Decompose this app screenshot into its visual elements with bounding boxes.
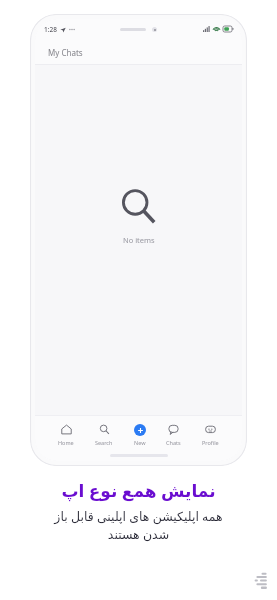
staticText: Home [58,439,74,446]
button[interactable]: Search [92,422,116,447]
staticText: Chats [166,439,181,446]
staticText: Profile [202,439,219,446]
staticText: New [134,439,146,446]
staticText: 1:28 [44,25,57,34]
other: Home [61,424,72,435]
other: Chats [168,424,179,435]
staticText: همه اپلیکیشن های اپلینی قابل باز شدن هست… [54,508,223,543]
other: Profile [205,424,216,435]
staticText: My Chats [48,47,83,58]
staticText: No items [123,235,155,245]
button[interactable]: Chats [163,422,184,447]
button[interactable]: Home [55,422,77,447]
button[interactable]: New [130,422,149,447]
other: Search [99,424,110,435]
staticText: Search [95,439,113,446]
other: New [134,424,146,436]
staticText: نمایش همع نوع اپ [61,479,216,502]
button[interactable]: Profile [199,422,222,447]
